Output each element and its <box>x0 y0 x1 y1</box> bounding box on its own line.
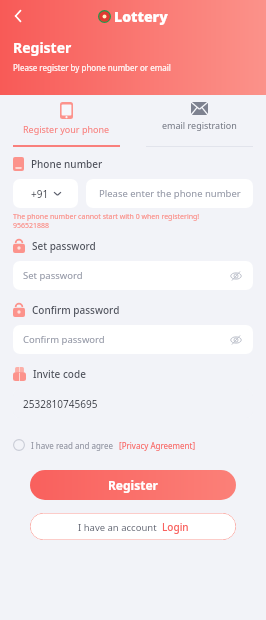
button[interactable]: Confirm password <box>13 325 253 354</box>
staticText: Set password <box>23 269 83 282</box>
staticText: Lottery <box>114 7 168 26</box>
staticText: Register <box>108 477 158 493</box>
staticText: Please enter the phone number <box>99 187 241 200</box>
staticText: Register <box>13 38 72 57</box>
staticText: Login <box>162 520 189 534</box>
button[interactable]: +91 <box>13 179 78 208</box>
staticText: email registration <box>162 119 237 131</box>
staticText: Register your phone <box>23 123 110 135</box>
staticText: Confirm password <box>23 333 105 346</box>
staticText: Please register by phone number or email <box>13 62 171 73</box>
button[interactable]: Please enter the phone number <box>86 179 253 208</box>
staticText: I have an account <box>78 521 157 534</box>
staticText: +91 <box>31 187 49 201</box>
button[interactable]: Show password <box>229 269 243 283</box>
button[interactable]: Set password <box>13 261 253 290</box>
staticText: Confirm password <box>32 303 120 317</box>
button[interactable]: Back <box>4 2 32 30</box>
staticText: [Privacy Agreement] <box>119 440 196 451</box>
staticText: Set password <box>32 239 96 253</box>
staticText: The phone number cannot start with 0 whe… <box>13 212 200 230</box>
button[interactable]: 2532810745695 <box>13 389 253 418</box>
button[interactable]: Register your phone <box>0 95 133 147</box>
button[interactable]: I have an account <box>30 513 236 540</box>
button[interactable]: email registration <box>133 95 266 147</box>
button[interactable]: Show password <box>229 333 243 347</box>
button[interactable]: I have read and agree <box>13 439 253 451</box>
button[interactable]: Register <box>30 470 236 500</box>
staticText: Invite code <box>33 367 86 381</box>
staticText: I have read and agree <box>31 440 114 451</box>
staticText: 2532810745695 <box>23 397 98 411</box>
staticText: Phone number <box>31 157 103 171</box>
